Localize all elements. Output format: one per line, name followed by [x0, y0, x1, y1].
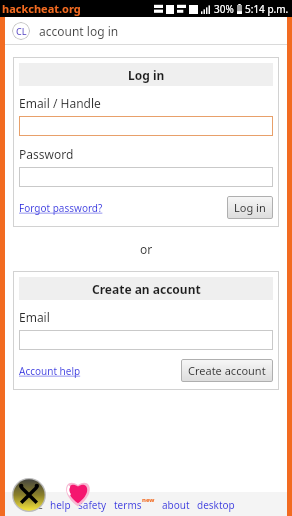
- staticText: CL: [31, 498, 43, 512]
- staticText: 30%: [214, 2, 234, 16]
- staticText: account log in: [39, 23, 119, 39]
- button[interactable]: Create account: [181, 359, 273, 382]
- button[interactable]: Favorites: [62, 476, 94, 508]
- button[interactable]: [19, 167, 273, 187]
- staticText: Account help: [19, 364, 81, 378]
- staticText: new: [142, 496, 155, 504]
- staticText: Log in: [128, 67, 165, 83]
- staticText: Password: [19, 146, 74, 162]
- staticText: CL: [16, 25, 27, 37]
- staticText: or: [13, 241, 279, 257]
- staticText: desktop: [197, 498, 235, 512]
- staticText: Create an account: [92, 281, 201, 297]
- staticText: Email / Handle: [19, 95, 101, 111]
- staticText: 5:14 p.m.: [245, 2, 289, 16]
- button[interactable]: about: [162, 498, 190, 512]
- staticText: Create account: [188, 363, 266, 378]
- button[interactable]: Log in: [227, 196, 273, 219]
- staticText: safety: [78, 498, 107, 512]
- button[interactable]: safety: [78, 498, 107, 512]
- button[interactable]: Craigslist home: [12, 22, 30, 40]
- button[interactable]: [19, 116, 273, 136]
- staticText: hackcheat.org: [2, 1, 81, 16]
- button[interactable]: help: [50, 498, 71, 512]
- staticText: help: [50, 498, 71, 512]
- button[interactable]: Forgot password?: [19, 201, 103, 215]
- button[interactable]: desktop: [197, 498, 235, 512]
- button[interactable]: Craigslist app: [12, 478, 46, 512]
- staticText: about: [162, 498, 190, 512]
- staticText: Log in: [234, 200, 266, 215]
- button[interactable]: terms: [114, 498, 155, 512]
- staticText: terms: [114, 498, 142, 512]
- button[interactable]: CL: [31, 498, 43, 512]
- staticText: Email: [19, 309, 50, 325]
- button[interactable]: [19, 330, 273, 350]
- staticText: Forgot password?: [19, 201, 103, 215]
- button[interactable]: Account help: [19, 364, 81, 378]
